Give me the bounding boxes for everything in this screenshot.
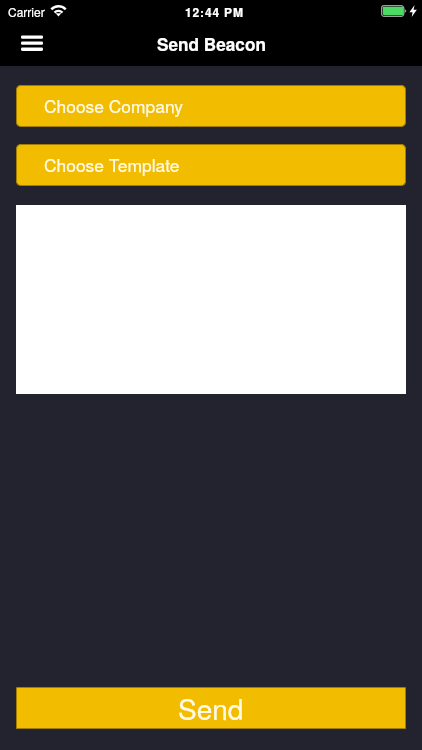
staticText: Send Beacon — [157, 32, 266, 57]
staticText: 12:44 PM — [185, 3, 244, 20]
button[interactable]: Choose Company — [16, 85, 406, 127]
staticText: Choose Company — [44, 93, 183, 118]
button[interactable]: Choose Template — [16, 144, 406, 186]
button[interactable]: Send — [16, 687, 406, 729]
staticText: Carrier — [8, 3, 45, 20]
staticText: Send — [178, 688, 244, 728]
button[interactable]: Menu — [13, 24, 51, 62]
staticText: Choose Template — [44, 152, 180, 177]
